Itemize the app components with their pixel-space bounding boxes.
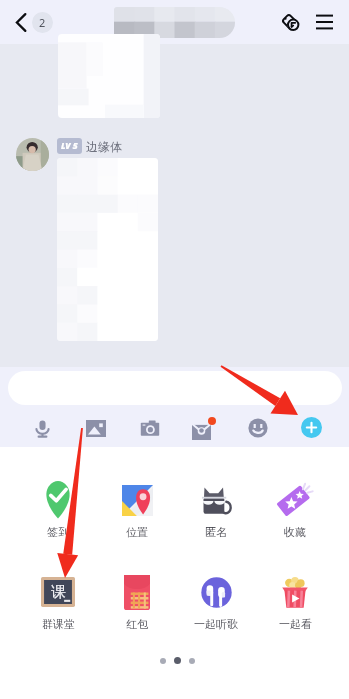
staticText: 位置 <box>126 525 148 539</box>
button[interactable]: 一起看 <box>259 572 331 631</box>
button[interactable]: More options <box>301 417 322 438</box>
button[interactable]: 红包 <box>101 572 173 631</box>
button[interactable]: 签到 <box>22 480 94 539</box>
staticText: 一起看 <box>279 617 312 631</box>
button[interactable]: 位置 <box>101 480 173 539</box>
button[interactable]: 课 <box>22 572 94 631</box>
staticText: 课 <box>51 583 66 602</box>
button[interactable]: Tag <box>277 9 303 35</box>
staticText: 2 <box>39 15 46 30</box>
staticText: 群课堂 <box>42 617 75 631</box>
staticText: 红包 <box>126 617 148 631</box>
button[interactable]: 2 <box>13 6 55 39</box>
button[interactable]: Camera <box>136 413 164 443</box>
button[interactable]: Voice input <box>28 413 56 443</box>
staticText: LV 5 <box>61 140 78 152</box>
staticText: 一起听歌 <box>194 617 238 631</box>
staticText: 收藏 <box>284 525 306 539</box>
button[interactable]: 匿名 <box>180 480 252 539</box>
button[interactable]: Emoji <box>244 413 272 443</box>
staticText: 签到 <box>47 525 69 539</box>
button[interactable]: 收藏 <box>259 480 331 539</box>
button[interactable]: Messages <box>190 413 218 443</box>
button[interactable]: Gallery <box>82 413 110 443</box>
staticText: 边缘体 <box>86 139 122 154</box>
button[interactable]: 一起听歌 <box>180 572 252 631</box>
staticText: 匿名 <box>205 525 227 539</box>
button[interactable] <box>8 371 342 405</box>
button[interactable]: Menu <box>313 11 335 33</box>
